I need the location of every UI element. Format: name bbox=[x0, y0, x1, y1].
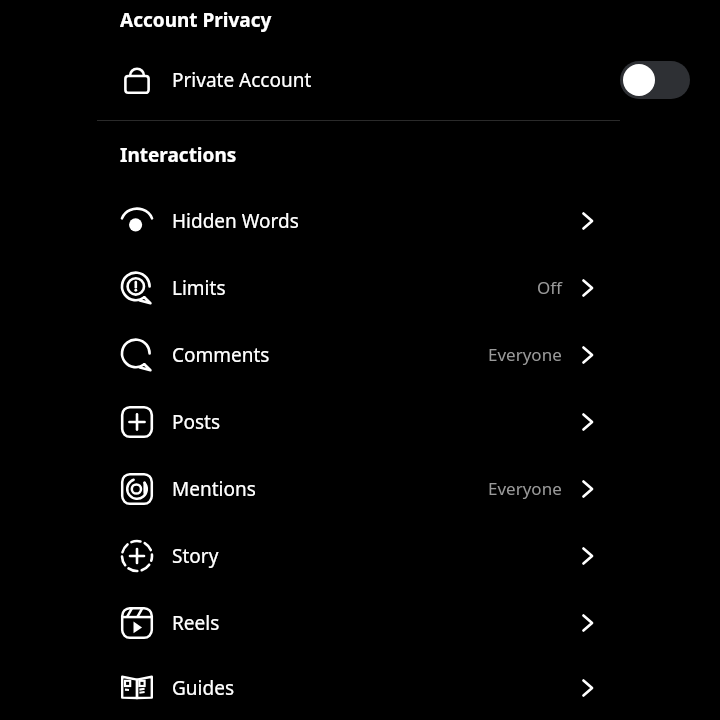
staticText: Everyone bbox=[488, 477, 562, 500]
staticText: Reels bbox=[172, 610, 220, 636]
button[interactable]: Guides bbox=[0, 656, 720, 720]
button[interactable]: Private Account bbox=[0, 51, 720, 109]
staticText: Mentions bbox=[172, 476, 256, 502]
staticText: Comments bbox=[172, 342, 270, 368]
button[interactable]: Hidden Words bbox=[0, 187, 720, 254]
staticText: Guides bbox=[172, 675, 234, 701]
button[interactable]: Limits bbox=[0, 254, 720, 321]
staticText: Hidden Words bbox=[172, 208, 299, 234]
staticText: Posts bbox=[172, 409, 221, 435]
staticText: Account Privacy bbox=[120, 7, 272, 33]
button[interactable]: Comments bbox=[0, 321, 720, 388]
staticText: Interactions bbox=[120, 142, 237, 168]
button[interactable]: Posts bbox=[0, 388, 720, 455]
button[interactable]: Private Account toggle bbox=[620, 61, 690, 99]
staticText: Private Account bbox=[172, 67, 312, 93]
button[interactable]: Reels bbox=[0, 589, 720, 656]
staticText: Story bbox=[172, 543, 219, 569]
button[interactable]: Story bbox=[0, 522, 720, 589]
button[interactable]: Mentions bbox=[0, 455, 720, 522]
staticText: Everyone bbox=[488, 343, 562, 366]
staticText: Off bbox=[537, 276, 562, 299]
staticText: Limits bbox=[172, 275, 226, 301]
